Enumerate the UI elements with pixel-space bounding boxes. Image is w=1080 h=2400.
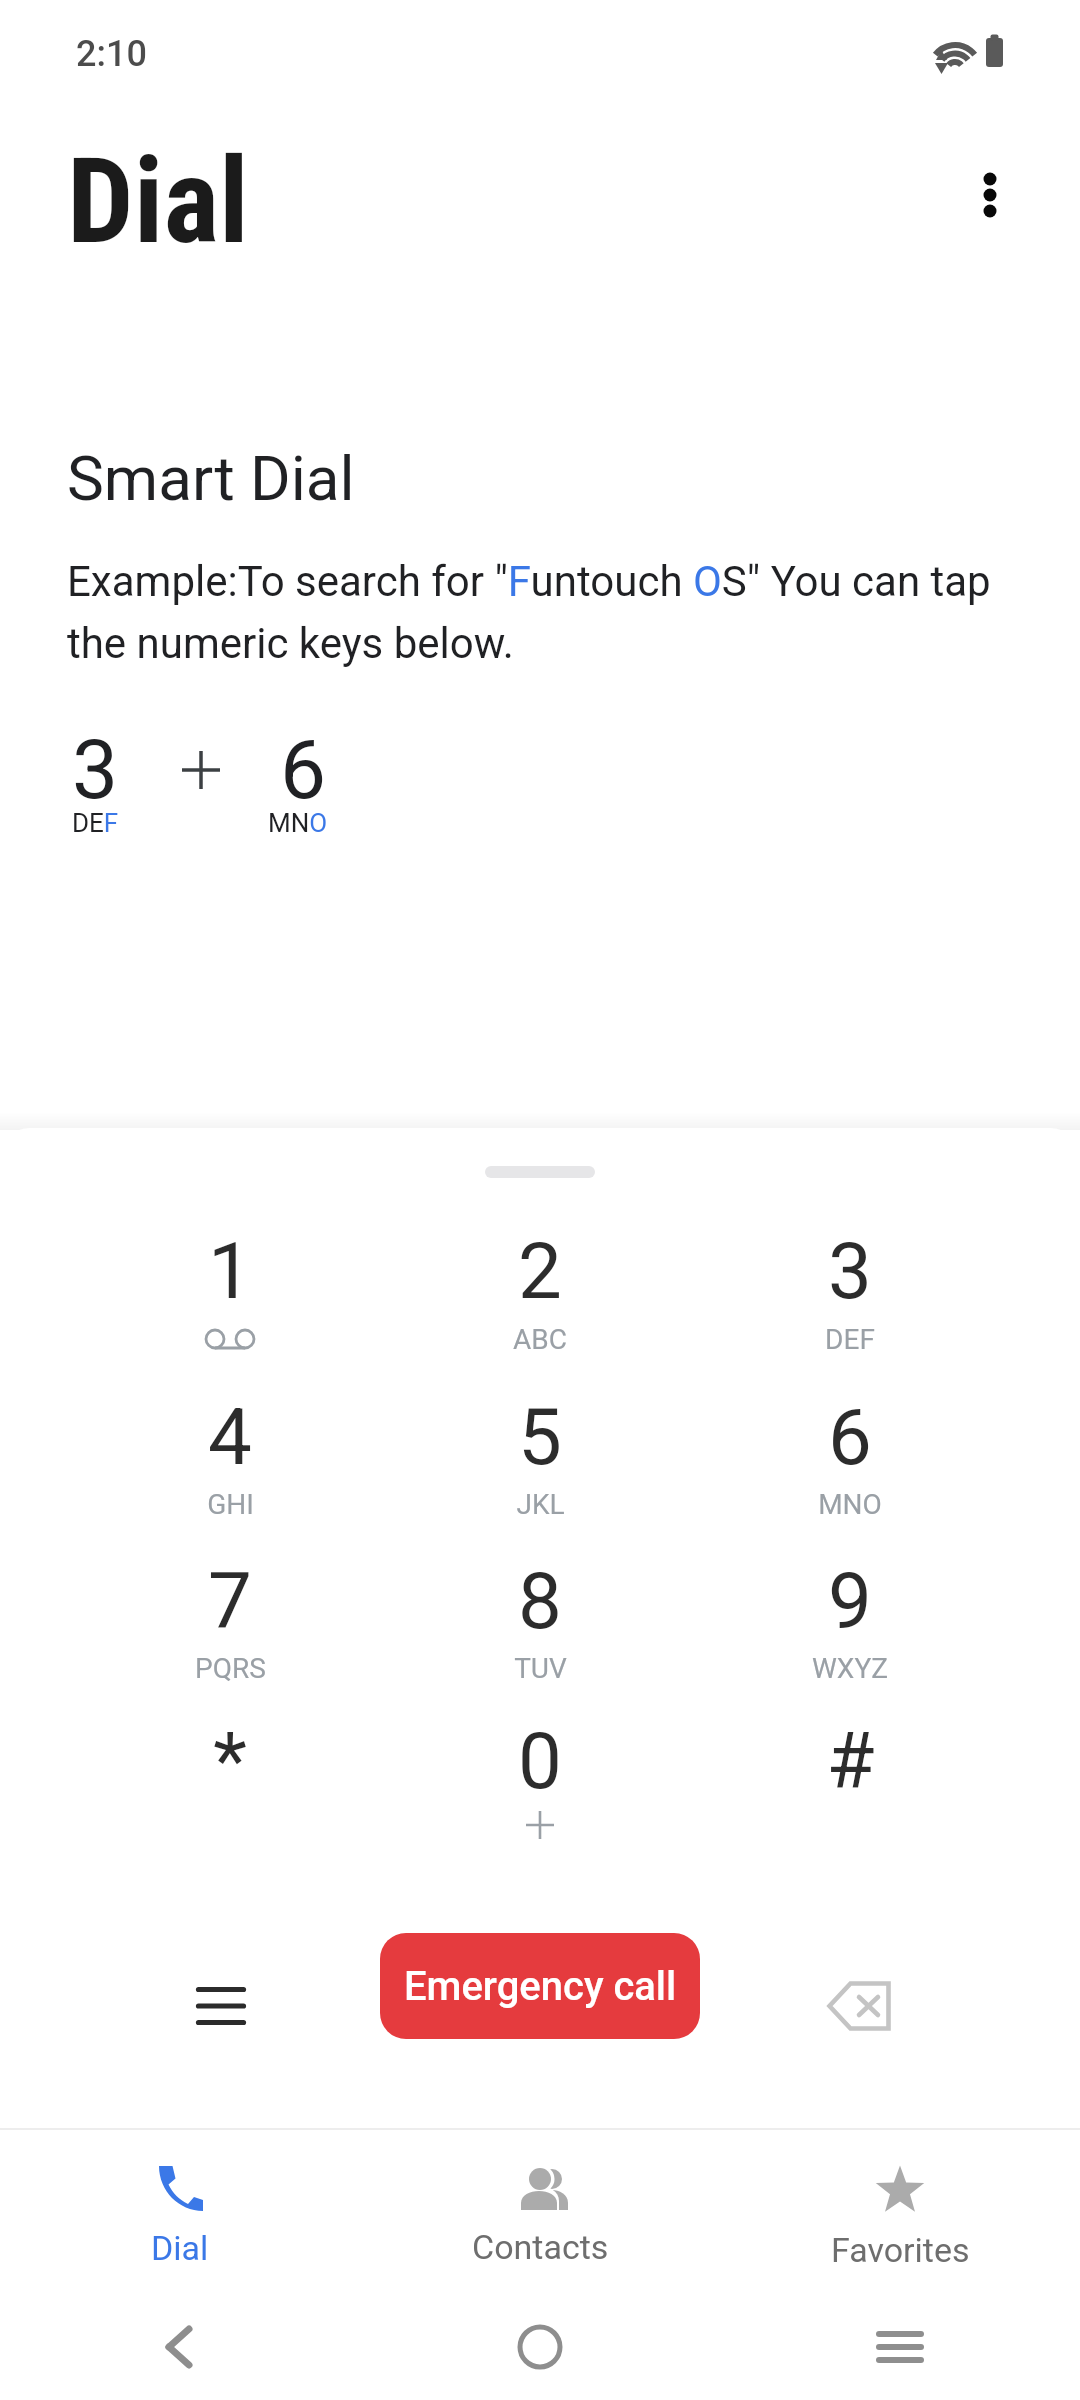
staticText: 2:10 — [76, 33, 147, 75]
staticText: Dial — [151, 2228, 209, 2268]
button[interactable] — [430, 1699, 650, 1849]
button[interactable]: Favorites — [720, 2128, 1080, 2293]
staticText: 9 — [828, 1556, 872, 1647]
button[interactable]: Call log — [151, 1946, 291, 2066]
button[interactable]: Contacts — [360, 2128, 720, 2293]
staticText: 6 — [280, 722, 327, 818]
staticText: Favorites — [831, 2230, 970, 2270]
staticText: TUV — [514, 1652, 567, 1685]
staticText: 4 — [208, 1392, 252, 1483]
button[interactable] — [120, 1699, 340, 1849]
button[interactable]: Emergency call — [380, 1933, 700, 2039]
staticText: 7 — [208, 1556, 252, 1647]
button[interactable]: Home — [360, 2293, 720, 2400]
staticText: PQRS — [195, 1652, 266, 1685]
button[interactable]: More options — [950, 155, 1030, 235]
button[interactable] — [740, 1375, 960, 1525]
staticText: # — [826, 1716, 875, 1807]
button[interactable]: Backspace — [789, 1946, 929, 2066]
staticText: 3 — [72, 722, 119, 818]
staticText: Dial — [67, 133, 249, 271]
staticText: Contacts — [472, 2227, 609, 2267]
button[interactable] — [430, 1209, 650, 1359]
button[interactable] — [120, 1539, 340, 1689]
button[interactable] — [120, 1375, 340, 1525]
button[interactable] — [120, 1209, 340, 1359]
staticText: MNO — [818, 1488, 882, 1521]
button[interactable] — [430, 1375, 650, 1525]
staticText: 3 — [828, 1226, 872, 1317]
staticText: DEF — [72, 808, 119, 838]
staticText: WXYZ — [812, 1652, 888, 1685]
staticText: 0 — [518, 1716, 562, 1807]
button[interactable]: Back — [0, 2293, 360, 2400]
button[interactable] — [740, 1699, 960, 1849]
button[interactable] — [740, 1539, 960, 1689]
button[interactable]: Dial — [0, 2128, 360, 2293]
staticText: JKL — [516, 1488, 565, 1521]
button[interactable]: Recent apps — [720, 2293, 1080, 2400]
staticText: DEF — [825, 1323, 875, 1356]
staticText: 1 — [208, 1226, 252, 1317]
button[interactable] — [740, 1209, 960, 1359]
staticText: Smart Dial — [67, 442, 355, 515]
staticText: MNO — [268, 808, 328, 838]
staticText: GHI — [207, 1488, 254, 1521]
staticText: 5 — [518, 1392, 562, 1483]
staticText: 8 — [518, 1556, 562, 1647]
staticText: ABC — [513, 1323, 567, 1356]
button[interactable] — [430, 1539, 650, 1689]
staticText: 6 — [828, 1392, 872, 1483]
staticText: Emergency call — [404, 1963, 677, 2010]
staticText: 2 — [518, 1226, 562, 1317]
staticText: * — [213, 1716, 247, 1807]
staticText: Example:To search for "Funtouch OS" You … — [67, 557, 997, 668]
